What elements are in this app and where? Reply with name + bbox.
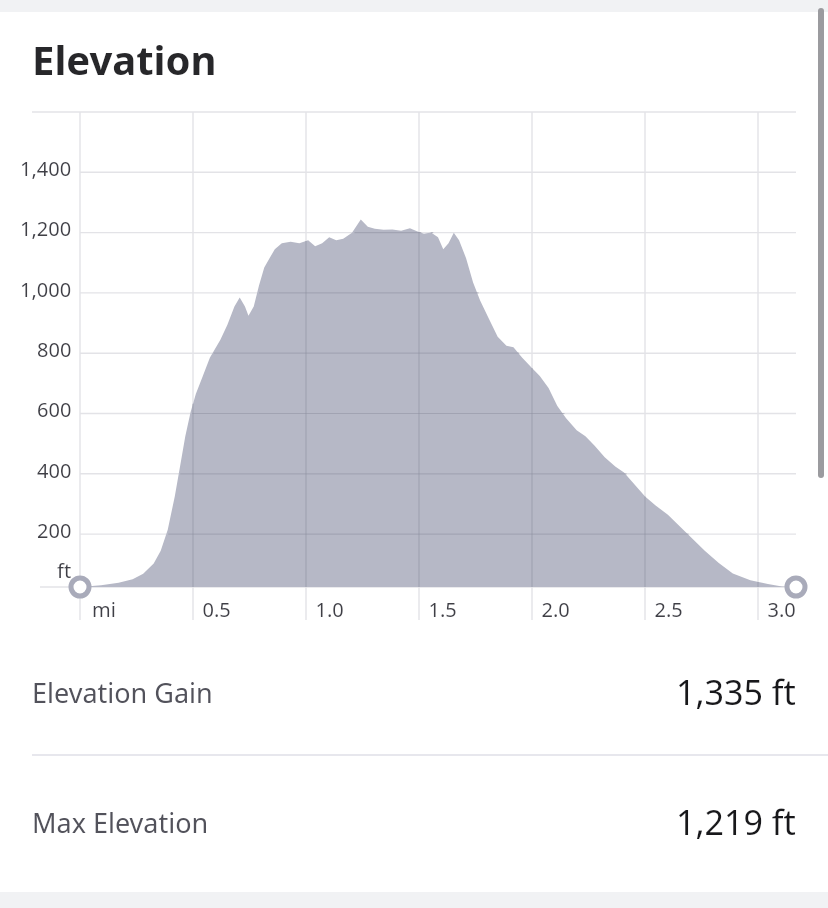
button[interactable]: Elevation detail card bbox=[0, 0, 828, 908]
